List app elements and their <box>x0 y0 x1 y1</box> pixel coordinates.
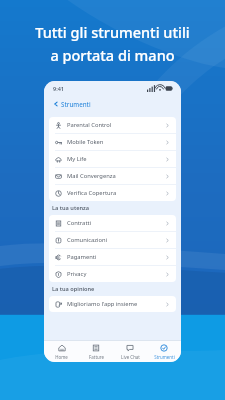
button[interactable]: Contratti <box>49 215 176 231</box>
button[interactable]: Fatture <box>79 341 113 362</box>
button[interactable]: Verifica Copertura <box>49 185 176 201</box>
button[interactable]: My Life <box>49 151 176 167</box>
staticText: Privacy <box>67 270 87 278</box>
staticText: Comunicazioni <box>67 236 108 244</box>
staticText: Mail Convergenza <box>67 172 116 180</box>
button[interactable]: Mobile Token <box>49 134 176 150</box>
staticText: Mobile Token <box>67 138 104 146</box>
button[interactable]: Miglioriamo l'app insieme <box>49 296 176 312</box>
staticText: Home <box>55 354 68 360</box>
button[interactable]: Mail Convergenza <box>49 168 176 184</box>
button[interactable]: Back <box>52 98 92 110</box>
button[interactable]: Live Chat <box>113 341 147 362</box>
button[interactable]: Comunicazioni <box>49 232 176 248</box>
staticText: Contratti <box>67 219 92 227</box>
staticText: Miglioriamo l'app insieme <box>67 300 138 308</box>
staticText: Verifica Copertura <box>67 189 117 197</box>
staticText: My Life <box>67 155 87 163</box>
staticText: a portata di mano <box>50 45 175 65</box>
staticText: Fatture <box>89 354 104 360</box>
button[interactable]: Home <box>44 341 79 362</box>
staticText: 9:41 <box>53 85 64 92</box>
staticText: Parental Control <box>67 121 112 129</box>
staticText: Live Chat <box>121 354 140 360</box>
staticText: La tua utenza <box>52 204 90 212</box>
button[interactable]: Strumenti <box>147 341 181 362</box>
staticText: Strumenti <box>61 100 91 108</box>
staticText: Tutti gli strumenti utili <box>35 22 190 42</box>
button[interactable]: Privacy <box>49 266 176 282</box>
staticText: Strumenti <box>154 354 175 360</box>
staticText: Pagamenti <box>67 253 97 261</box>
button[interactable]: Parental Control <box>49 117 176 133</box>
button[interactable]: Pagamenti <box>49 249 176 265</box>
staticText: La tua opinione <box>52 285 95 293</box>
